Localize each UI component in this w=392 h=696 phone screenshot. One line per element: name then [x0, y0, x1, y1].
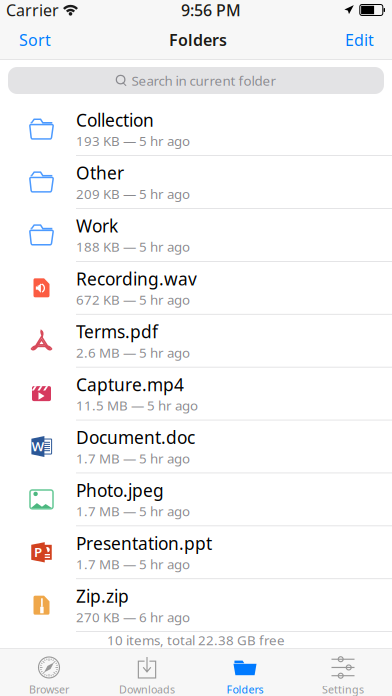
staticText: Terms.pdf: [76, 320, 158, 343]
button[interactable]: Edit: [345, 29, 374, 50]
staticText: 188 KB — 5 hr ago: [76, 238, 190, 255]
staticText: 11.5 MB — 5 hr ago: [76, 396, 198, 414]
staticText: Presentation.ppt: [76, 532, 212, 555]
staticText: Carrier: [6, 0, 59, 21]
staticText: Sort: [19, 29, 51, 50]
staticText: Work: [76, 214, 118, 237]
staticText: Capture.mp4: [76, 373, 184, 396]
button[interactable]: Zip.zip: [0, 579, 392, 632]
staticText: 270 KB — 6 hr ago: [76, 608, 190, 626]
staticText: Downloads: [119, 682, 175, 696]
staticText: 2.6 MB — 5 hr ago: [76, 344, 190, 361]
button[interactable]: Photo.jpeg: [0, 473, 392, 526]
staticText: Collection: [76, 108, 154, 131]
button[interactable]: Settings: [294, 649, 392, 696]
staticText: Settings: [322, 682, 364, 696]
button[interactable]: Capture.mp4: [0, 367, 392, 420]
button[interactable]: W: [0, 420, 392, 473]
staticText: 9:56 PM: [181, 0, 241, 21]
staticText: 1.7 MB — 5 hr ago: [76, 449, 190, 467]
button[interactable]: Sort: [19, 29, 51, 50]
staticText: Document.doc: [76, 426, 195, 449]
staticText: Folders: [169, 29, 227, 50]
staticText: Recording.wav: [76, 267, 197, 290]
staticText: 10 items, total 22.38 GB free: [107, 631, 285, 649]
button[interactable]: P: [0, 526, 392, 579]
staticText: Browser: [29, 682, 69, 696]
button[interactable]: Folders: [196, 649, 294, 696]
staticText: Edit: [345, 29, 374, 50]
staticText: Search in current folder: [131, 72, 276, 89]
button[interactable]: Downloads: [98, 649, 196, 696]
button[interactable]: Browser: [0, 649, 98, 696]
button[interactable]: Work: [0, 209, 392, 262]
button[interactable]: Terms.pdf: [0, 315, 392, 367]
staticText: 193 KB — 5 hr ago: [76, 132, 190, 150]
staticText: W: [31, 437, 44, 455]
staticText: P: [34, 543, 42, 561]
staticText: 1.7 MB — 5 hr ago: [76, 502, 190, 520]
staticText: 209 KB — 5 hr ago: [76, 185, 190, 203]
button[interactable]: Recording.wav: [0, 262, 392, 315]
staticText: Photo.jpeg: [76, 479, 164, 502]
staticText: Folders: [226, 682, 263, 696]
staticText: 672 KB — 5 hr ago: [76, 291, 190, 308]
staticText: Zip.zip: [76, 585, 129, 608]
staticText: Other: [76, 161, 124, 184]
button[interactable]: Other: [0, 156, 392, 209]
staticText: 1.7 MB — 5 hr ago: [76, 555, 190, 573]
button[interactable]: Collection: [0, 103, 392, 156]
